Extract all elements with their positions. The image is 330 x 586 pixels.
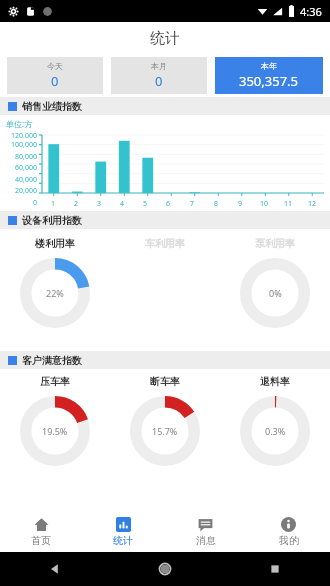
staticText: 本年 <box>261 61 277 71</box>
staticText: 本月 <box>151 61 167 71</box>
button[interactable]: 退料率 <box>220 369 330 469</box>
staticText: 4:36 <box>300 4 322 19</box>
staticText: 0 <box>0 198 37 207</box>
button[interactable]: Back <box>48 562 62 576</box>
staticText: 单位:方 <box>6 118 33 129</box>
staticText: 60,000 <box>0 163 37 172</box>
staticText: 15.7% <box>152 425 178 437</box>
staticText: 350,357.5 <box>239 72 299 90</box>
button[interactable]: 本月 <box>111 57 207 94</box>
button[interactable]: 设备利用指数 <box>8 211 330 229</box>
staticText: 9 <box>238 199 243 209</box>
staticText: 12 <box>308 199 317 209</box>
staticText: 首页 <box>31 534 51 547</box>
staticText: 泵利用率 <box>255 237 295 250</box>
staticText: 5 <box>143 199 148 209</box>
staticText: 客户满意指数 <box>22 354 82 367</box>
button[interactable]: 消息 <box>164 512 247 552</box>
staticText: 11 <box>284 199 293 209</box>
staticText: 2 <box>74 199 79 209</box>
button[interactable]: 本年 <box>215 57 323 94</box>
staticText: 楼利用率 <box>35 237 75 250</box>
staticText: 0 <box>155 72 163 90</box>
staticText: 今天 <box>47 61 63 71</box>
button[interactable]: 泵利用率 <box>220 229 330 351</box>
staticText: 我的 <box>279 534 299 547</box>
button[interactable]: 今天 <box>7 57 103 94</box>
staticText: 10 <box>260 199 269 209</box>
staticText: 6 <box>166 199 171 209</box>
staticText: 20,000 <box>0 186 37 195</box>
button[interactable]: 压车率 <box>0 369 110 469</box>
staticText: 断车率 <box>150 375 180 388</box>
staticText: 1 <box>51 199 56 209</box>
button[interactable]: 首页 <box>0 512 82 552</box>
staticText: 100,000 <box>0 140 37 149</box>
staticText: 40,000 <box>0 175 37 184</box>
staticText: 统计 <box>150 29 180 48</box>
staticText: 19.5% <box>42 425 68 437</box>
button[interactable]: 销售业绩指数 <box>8 97 330 115</box>
staticText: 0.3% <box>265 425 286 437</box>
staticText: 0 <box>51 72 59 90</box>
staticText: 压车率 <box>40 375 70 388</box>
staticText: 消息 <box>196 534 216 547</box>
staticText: 统计 <box>113 534 133 547</box>
staticText: 4 <box>120 199 125 209</box>
button[interactable]: Home <box>158 562 172 576</box>
staticText: 7 <box>190 199 195 209</box>
button[interactable]: 楼利用率 <box>0 229 110 351</box>
button[interactable]: 客户满意指数 <box>8 351 330 369</box>
staticText: 设备利用指数 <box>22 214 82 227</box>
button[interactable]: Recents <box>268 562 282 576</box>
staticText: 22% <box>46 287 64 299</box>
button[interactable]: 统计 <box>82 512 164 552</box>
staticText: 退料率 <box>260 375 290 388</box>
staticText: 0% <box>269 287 282 299</box>
button[interactable]: 我的 <box>247 512 330 552</box>
button[interactable]: 车利用率 <box>110 229 220 351</box>
staticText: 120,000 <box>0 131 37 138</box>
staticText: 8 <box>214 199 219 209</box>
staticText: 3 <box>97 199 102 209</box>
staticText: 车利用率 <box>145 237 185 250</box>
staticText: 销售业绩指数 <box>22 100 82 113</box>
button[interactable]: 断车率 <box>110 369 220 469</box>
staticText: 80,000 <box>0 152 37 161</box>
